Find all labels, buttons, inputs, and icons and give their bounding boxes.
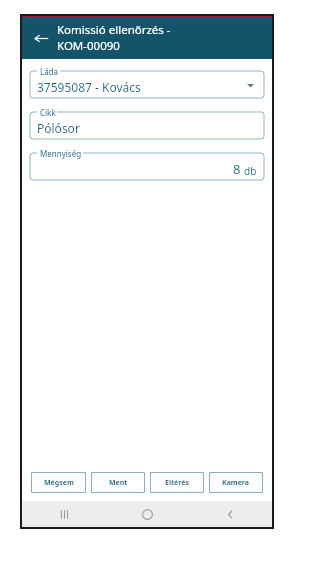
button[interactable]: Back [28, 25, 54, 51]
staticText: Pólósor [37, 120, 80, 136]
button[interactable]: Recent apps [22, 501, 106, 527]
button[interactable]: Cikk [30, 107, 264, 139]
button[interactable]: Mégsem [31, 472, 86, 493]
staticText: Ment [109, 478, 128, 488]
staticText: Mégsem [44, 478, 74, 488]
staticText: Mennyiség [40, 148, 82, 159]
button[interactable]: Ment [91, 472, 145, 493]
staticText: Cikk [40, 107, 56, 118]
button[interactable]: Eltérés [150, 472, 204, 493]
staticText: Komissió ellenőrzés - [57, 22, 171, 38]
staticText: Láda [40, 66, 59, 77]
button[interactable]: Kamera [209, 472, 263, 493]
staticText: 37595087 - Kovács [37, 79, 141, 95]
staticText: KOM-00090 [57, 38, 120, 54]
button[interactable]: Back [189, 501, 272, 527]
button[interactable]: Home [106, 501, 189, 527]
button[interactable]: Láda [30, 66, 264, 98]
button[interactable]: Open dropdown [244, 79, 256, 91]
staticText: 8 [233, 160, 241, 178]
staticText: db [244, 164, 257, 178]
staticText: Eltérés [165, 478, 189, 488]
staticText: Kamera [222, 478, 250, 488]
button[interactable]: Mennyiség [30, 148, 264, 180]
